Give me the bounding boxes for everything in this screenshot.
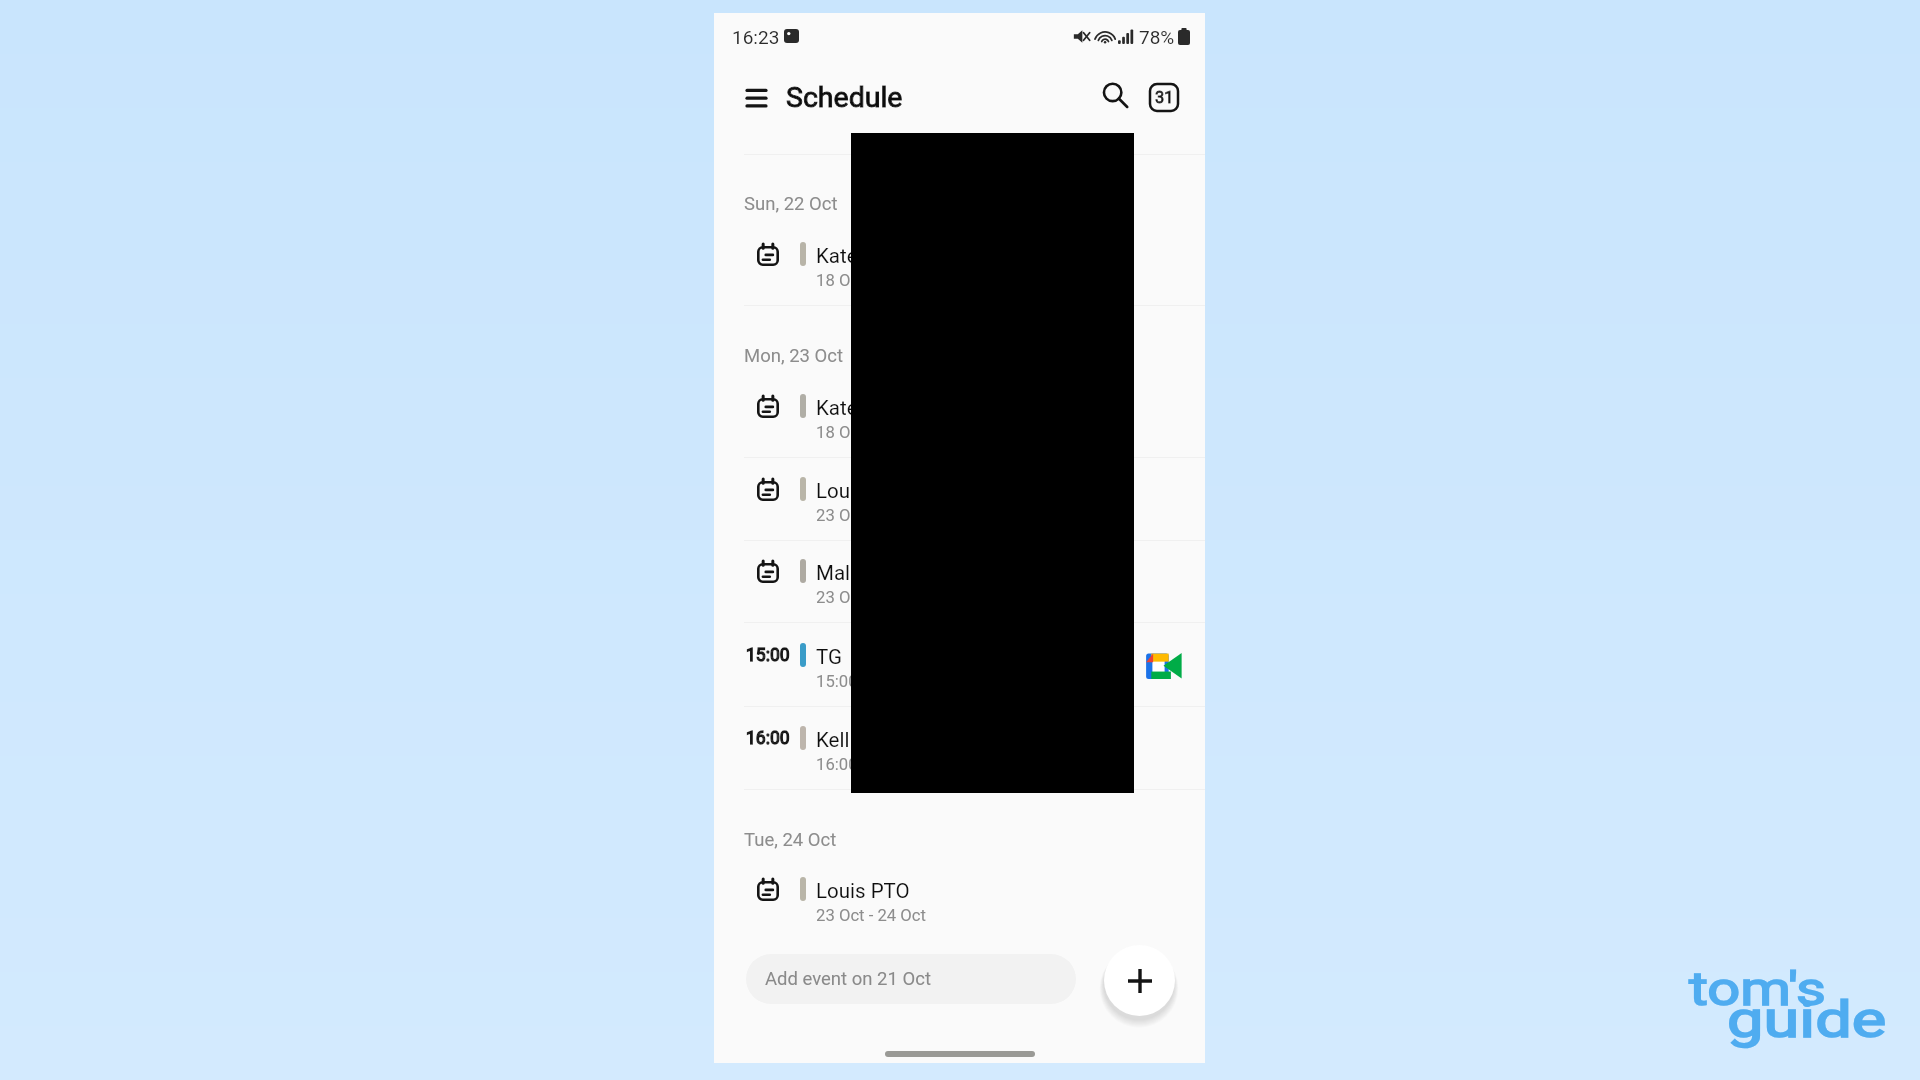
staticText: 16:00: [816, 755, 858, 775]
staticText: Add event on 21 Oct: [765, 968, 931, 990]
staticText: 78%: [1139, 26, 1175, 48]
staticText: Kell: [816, 728, 850, 752]
staticText: Louis PTO: [816, 879, 910, 903]
staticText: Kate: [816, 244, 858, 268]
button[interactable]: Kate: [744, 364, 1199, 446]
staticText: tom's: [1689, 961, 1827, 1016]
staticText: Schedule: [786, 81, 903, 114]
staticText: 31: [1155, 88, 1174, 107]
button[interactable]: Kate: [744, 212, 1199, 294]
staticText: Tue, 24 Oct: [744, 829, 837, 851]
staticText: 15:00: [746, 645, 790, 666]
staticText: Louis: [816, 479, 866, 503]
button[interactable]: Add event on 21 Oct: [746, 954, 1076, 1004]
staticText: 16:00: [746, 728, 790, 749]
staticText: Schedule: [786, 81, 903, 114]
staticText: 31: [1155, 88, 1174, 107]
staticText: guide: [1727, 991, 1887, 1050]
staticText: Sun, 22 Oct: [744, 193, 838, 215]
button[interactable]: 16:00: [744, 696, 1199, 778]
staticText: Mal: [816, 561, 851, 585]
button[interactable]: Search: [1098, 78, 1132, 112]
button[interactable]: Jump to today: [1147, 80, 1181, 114]
button[interactable]: Mal: [744, 529, 1199, 611]
staticText: 23 Oct: [816, 588, 865, 608]
staticText: Mon, 23 Oct: [744, 345, 843, 367]
button[interactable]: 15:00: [744, 613, 1199, 695]
staticText: 23 Oct - 24 Oct: [816, 906, 927, 926]
staticText: 16:23: [732, 26, 780, 48]
button[interactable]: Louis: [744, 447, 1199, 529]
button[interactable]: Open navigation menu: [742, 85, 770, 111]
staticText: 23 Oct: [816, 506, 865, 526]
staticText: 18 Oct - 23 Oct: [816, 423, 927, 443]
button[interactable]: Louis PTO: [744, 847, 1199, 929]
staticText: 15:00: [816, 672, 858, 692]
button[interactable]: Create new event: [1104, 945, 1175, 1016]
staticText: 16:00: [746, 728, 790, 749]
staticText: 15:00: [746, 645, 790, 666]
staticText: Kate: [816, 396, 858, 420]
staticText: 18 Oct - 23 Oct: [816, 271, 927, 291]
staticText: TG: [816, 645, 842, 669]
